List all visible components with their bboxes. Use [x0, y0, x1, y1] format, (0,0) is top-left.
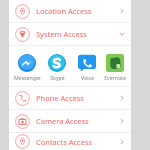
staticText: Voice: [81, 74, 94, 81]
staticText: Evernote: [104, 74, 126, 81]
button[interactable]: Messenger: [12, 51, 42, 81]
staticText: Messenger: [14, 74, 41, 81]
staticText: Contacts Access: [36, 137, 93, 147]
staticText: Skype: [50, 74, 65, 81]
button[interactable]: Camera Access: [9, 110, 131, 132]
button[interactable]: Contacts Access: [9, 133, 131, 150]
staticText: Phone Access: [36, 93, 84, 103]
button[interactable]: Voice: [72, 51, 102, 81]
button[interactable]: Location Access: [9, 0, 131, 22]
button[interactable]: System Access: [9, 23, 131, 45]
staticText: System Access: [36, 29, 87, 39]
button[interactable]: Skype: [42, 51, 72, 81]
button[interactable]: Phone Access: [9, 87, 131, 109]
staticText: Camera Access: [36, 116, 89, 126]
staticText: Location Access: [36, 6, 92, 16]
button[interactable]: Evernote: [102, 51, 128, 81]
